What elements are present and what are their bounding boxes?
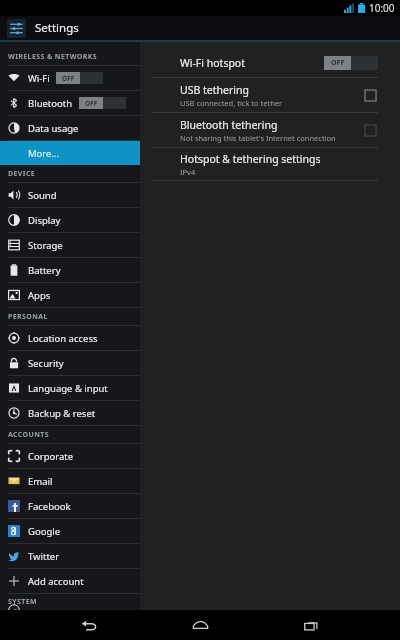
button[interactable]: Battery [0,258,140,282]
button[interactable]: Display [0,208,140,232]
button[interactable]: Home [178,610,222,640]
button[interactable]: OFF [56,72,103,84]
staticText: SYSTEM [8,597,38,607]
staticText: 10:00 [369,1,395,15]
button[interactable]: Email [0,469,140,493]
button[interactable]: Back [67,610,111,640]
button[interactable]: Backup & reset [0,401,140,425]
staticText: Apps [28,289,51,302]
button[interactable]: More... [0,141,140,165]
staticText: ACCOUNTS [8,430,50,440]
button[interactable]: Add account [0,569,140,593]
staticText: Security [28,357,64,370]
button[interactable]: Location access [0,326,140,350]
button[interactable]: Google [0,519,140,543]
staticText: Bluetooth tethering [180,118,278,132]
staticText: Twitter [28,550,60,563]
staticText: Data usage [28,122,79,135]
button[interactable]: Sound [0,183,140,207]
button[interactable]: Facebook [0,494,140,518]
staticText: WIRELESS & NETWORKS [8,52,98,62]
staticText: Wi-Fi hotspot [180,56,246,70]
staticText: Wi-Fi [28,72,50,85]
staticText: Facebook [28,500,71,513]
staticText: PERSONAL [8,312,48,322]
staticText: Not sharing this tablet's Internet conne… [180,133,336,143]
staticText: Settings [35,20,79,36]
button[interactable]: OFF [79,97,126,109]
button[interactable]: Security [0,351,140,375]
button[interactable]: Language & input [0,376,140,400]
staticText: Backup & reset [28,407,96,420]
staticText: Language & input [28,382,108,395]
button[interactable]: Wi-Fi [0,66,140,90]
button[interactable]: Toggle tethering [362,87,378,103]
staticText: Google [28,525,61,538]
button[interactable]: Twitter [0,544,140,568]
staticText: More... [28,147,60,160]
staticText: USB tethering [180,83,249,97]
button[interactable]: Bluetooth [0,91,140,115]
staticText: OFF [331,58,345,68]
staticText: Bluetooth [28,97,73,110]
button[interactable]: Wi-Fi hotspot switch, off [324,56,378,70]
button[interactable]: Bluetooth tethering [140,113,400,147]
staticText: Display [28,214,61,227]
staticText: Email [28,475,53,488]
button[interactable]: USB tethering [140,78,400,112]
button[interactable]: Apps [0,283,140,307]
staticText: Battery [28,264,61,277]
button[interactable]: Storage [0,233,140,257]
staticText: Corporate [28,450,74,463]
staticText: Sound [28,189,57,202]
staticText: Add account [28,575,84,588]
button[interactable]: Settings app icon [7,19,26,38]
button[interactable]: Hotspot & tethering settings [140,148,400,180]
staticText: Location access [28,332,98,345]
button[interactable]: Wi-Fi hotspot [140,49,400,77]
staticText: OFF [62,74,75,83]
staticText: USB connected, tick to tether [180,98,283,108]
button[interactable]: Data usage [0,116,140,140]
button[interactable]: Corporate [0,444,140,468]
staticText: DEVICE [8,169,36,179]
staticText: OFF [85,99,98,108]
staticText: Storage [28,239,63,252]
staticText: Hotspot & tethering settings [180,152,321,166]
button[interactable]: Toggle tethering [362,122,378,138]
staticText: IPv4 [180,167,196,177]
button[interactable]: Recent apps [289,610,333,640]
